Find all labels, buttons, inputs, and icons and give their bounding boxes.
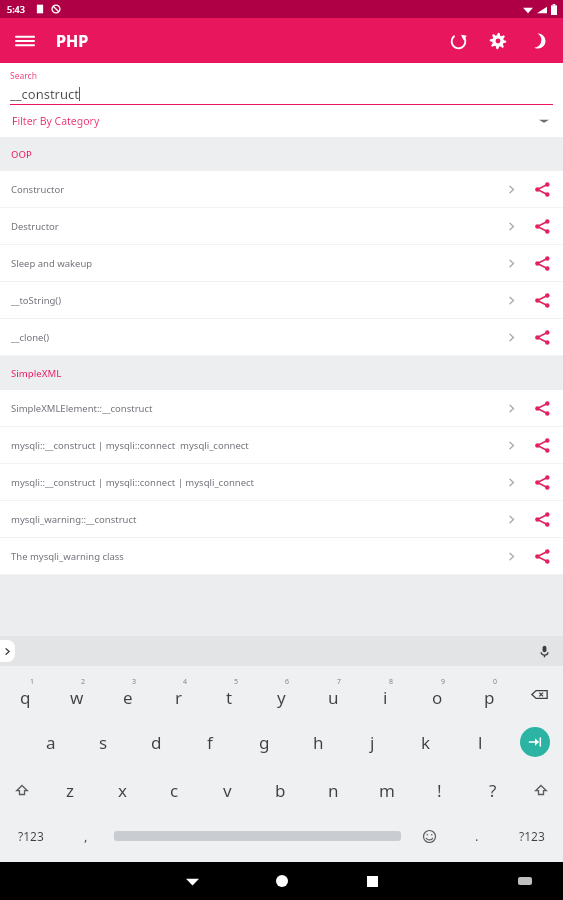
button[interactable]: Share mysqli_warning::__construct	[525, 502, 559, 536]
staticText: .	[475, 827, 479, 845]
button[interactable]: Share mysqli::__construct | mysqli::conn…	[525, 428, 559, 462]
button[interactable]: 8	[359, 670, 411, 718]
staticText: __construct	[10, 85, 79, 102]
button[interactable]: ,	[62, 814, 110, 858]
button[interactable]: Switch keyboard	[511, 867, 539, 895]
button[interactable]: ?123	[0, 814, 62, 858]
button[interactable]: h	[291, 718, 345, 766]
button[interactable]: mysqli::__construct | mysqli::connect | …	[0, 464, 563, 500]
button[interactable]: Destructor	[0, 208, 563, 244]
button[interactable]: j	[345, 718, 399, 766]
button[interactable]: !	[413, 766, 466, 814]
button[interactable]: __toString()	[0, 282, 563, 318]
button[interactable]: Refresh	[441, 24, 475, 58]
button[interactable]: c	[148, 766, 201, 814]
button[interactable]: Settings	[481, 24, 515, 58]
button[interactable]: Open SimpleXMLElement::__construct	[497, 394, 525, 422]
staticText: h	[313, 731, 324, 754]
button[interactable]: 6	[255, 670, 307, 718]
button[interactable]: n	[307, 766, 360, 814]
button[interactable]: Home	[265, 864, 299, 898]
button[interactable]: 5	[204, 670, 255, 718]
button[interactable]: b	[254, 766, 307, 814]
staticText: e	[123, 686, 133, 709]
staticText: Sleep and wakeup	[11, 257, 489, 270]
button[interactable]: Share The mysqli_warning class	[525, 539, 559, 573]
button[interactable]: Share Sleep and wakeup	[525, 246, 559, 280]
button[interactable]: g	[237, 718, 291, 766]
button[interactable]: Open mysqli_warning::__construct	[497, 505, 525, 533]
button[interactable]: Recent apps	[355, 864, 389, 898]
button[interactable]: 7	[307, 670, 359, 718]
button[interactable]: .	[453, 814, 501, 858]
button[interactable]: SimpleXMLElement::__construct	[0, 390, 563, 426]
staticText: The mysqli_warning class	[11, 550, 489, 563]
button[interactable]: Share SimpleXMLElement::__construct	[525, 391, 559, 425]
button[interactable]: Enter	[520, 727, 550, 757]
button[interactable]: Share __clone()	[525, 320, 559, 354]
button[interactable]: m	[360, 766, 413, 814]
button[interactable]: Share Destructor	[525, 209, 559, 243]
staticText: t	[226, 686, 233, 709]
button[interactable]: Expand suggestions	[0, 640, 15, 662]
button[interactable]: 3	[102, 670, 153, 718]
staticText: 8	[389, 677, 394, 687]
button[interactable]: ?	[466, 766, 519, 814]
button[interactable]: Emoji	[405, 814, 453, 858]
button[interactable]: Open Constructor	[497, 175, 525, 203]
button[interactable]: z	[44, 766, 96, 814]
staticText: p	[484, 686, 495, 709]
button[interactable]: Space	[114, 814, 401, 858]
staticText: z	[66, 779, 74, 802]
button[interactable]: Open Sleep and wakeup	[497, 249, 525, 277]
staticText: r	[175, 686, 183, 709]
button[interactable]: Sleep and wakeup	[0, 245, 563, 281]
button[interactable]: f	[183, 718, 237, 766]
button[interactable]: The mysqli_warning class	[0, 538, 563, 574]
button[interactable]: __clone()	[0, 319, 563, 355]
button[interactable]: Back	[175, 864, 209, 898]
button[interactable]: d	[130, 718, 183, 766]
button[interactable]: Open The mysqli_warning class	[497, 542, 525, 570]
staticText: 5:43	[7, 3, 25, 15]
button[interactable]: a	[24, 718, 77, 766]
staticText: o	[432, 686, 443, 709]
button[interactable]: 9	[411, 670, 463, 718]
button[interactable]: Open __toString()	[497, 286, 525, 314]
staticText: n	[328, 779, 339, 802]
staticText: mysqli::__construct | mysqli::connect my…	[11, 439, 489, 452]
button[interactable]: Shift	[519, 766, 563, 814]
button[interactable]: x	[96, 766, 148, 814]
button[interactable]: Open navigation menu	[10, 26, 40, 56]
button[interactable]: Open Destructor	[497, 212, 525, 240]
button[interactable]: Shift	[0, 766, 44, 814]
staticText: ?123	[519, 828, 545, 844]
button[interactable]: Open mysqli::__construct | mysqli::conne…	[497, 468, 525, 496]
button[interactable]: Voice input	[533, 640, 555, 662]
button[interactable]: Open __clone()	[497, 323, 525, 351]
button[interactable]: 0	[463, 670, 515, 718]
button[interactable]: Share __toString()	[525, 283, 559, 317]
staticText: q	[20, 686, 31, 709]
button[interactable]: mysqli_warning::__construct	[0, 501, 563, 537]
button[interactable]: 2	[51, 670, 102, 718]
button[interactable]: Backspace	[515, 670, 563, 718]
staticText: 2	[81, 677, 86, 687]
button[interactable]: Toggle dark mode	[521, 24, 555, 58]
button[interactable]: 4	[153, 670, 204, 718]
staticText: g	[259, 731, 270, 754]
button[interactable]: Share Constructor	[525, 172, 559, 206]
staticText: d	[151, 731, 162, 754]
button[interactable]: Share mysqli::__construct | mysqli::conn…	[525, 465, 559, 499]
button[interactable]: Filter By Category	[0, 105, 563, 137]
button[interactable]: k	[399, 718, 453, 766]
button[interactable]: s	[77, 718, 130, 766]
button[interactable]: l	[453, 718, 507, 766]
staticText: y	[277, 686, 286, 709]
button[interactable]: v	[201, 766, 254, 814]
button[interactable]: Open mysqli::__construct | mysqli::conne…	[497, 431, 525, 459]
button[interactable]: ?123	[501, 814, 563, 858]
button[interactable]: 1	[0, 670, 51, 718]
button[interactable]: mysqli::__construct | mysqli::connect my…	[0, 427, 563, 463]
button[interactable]: Constructor	[0, 171, 563, 207]
